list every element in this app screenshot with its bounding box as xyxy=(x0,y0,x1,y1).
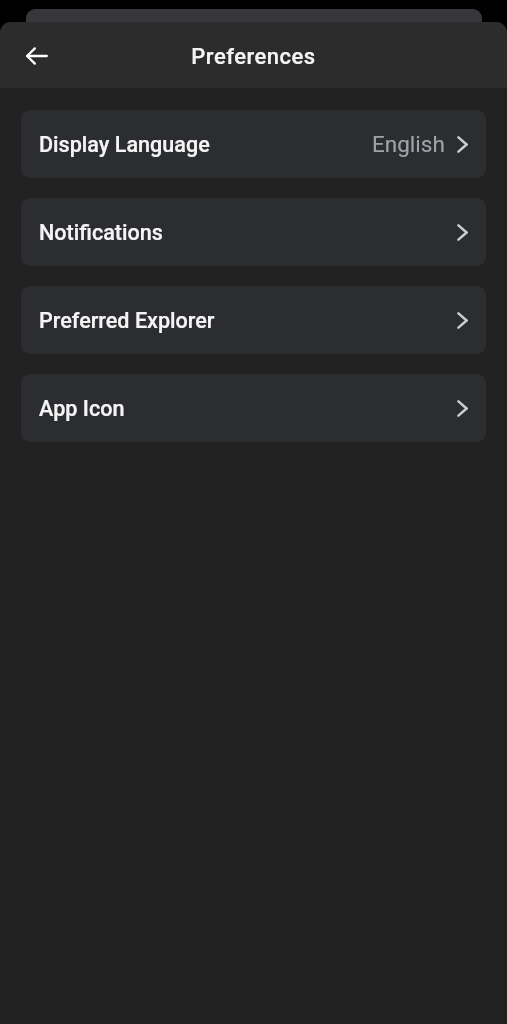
staticText: English xyxy=(372,131,445,157)
staticText: Notifications xyxy=(39,220,163,245)
button[interactable]: Preferred Explorer xyxy=(21,286,486,354)
button[interactable]: Display Language xyxy=(21,110,486,178)
button[interactable]: App Icon xyxy=(21,374,486,442)
staticText: Preferences xyxy=(191,44,316,70)
staticText: Preferred Explorer xyxy=(39,308,215,333)
staticText: App Icon xyxy=(39,396,125,421)
staticText: Display Language xyxy=(39,132,210,157)
button[interactable]: Notifications xyxy=(21,198,486,266)
button[interactable]: Navigate back xyxy=(13,32,61,80)
